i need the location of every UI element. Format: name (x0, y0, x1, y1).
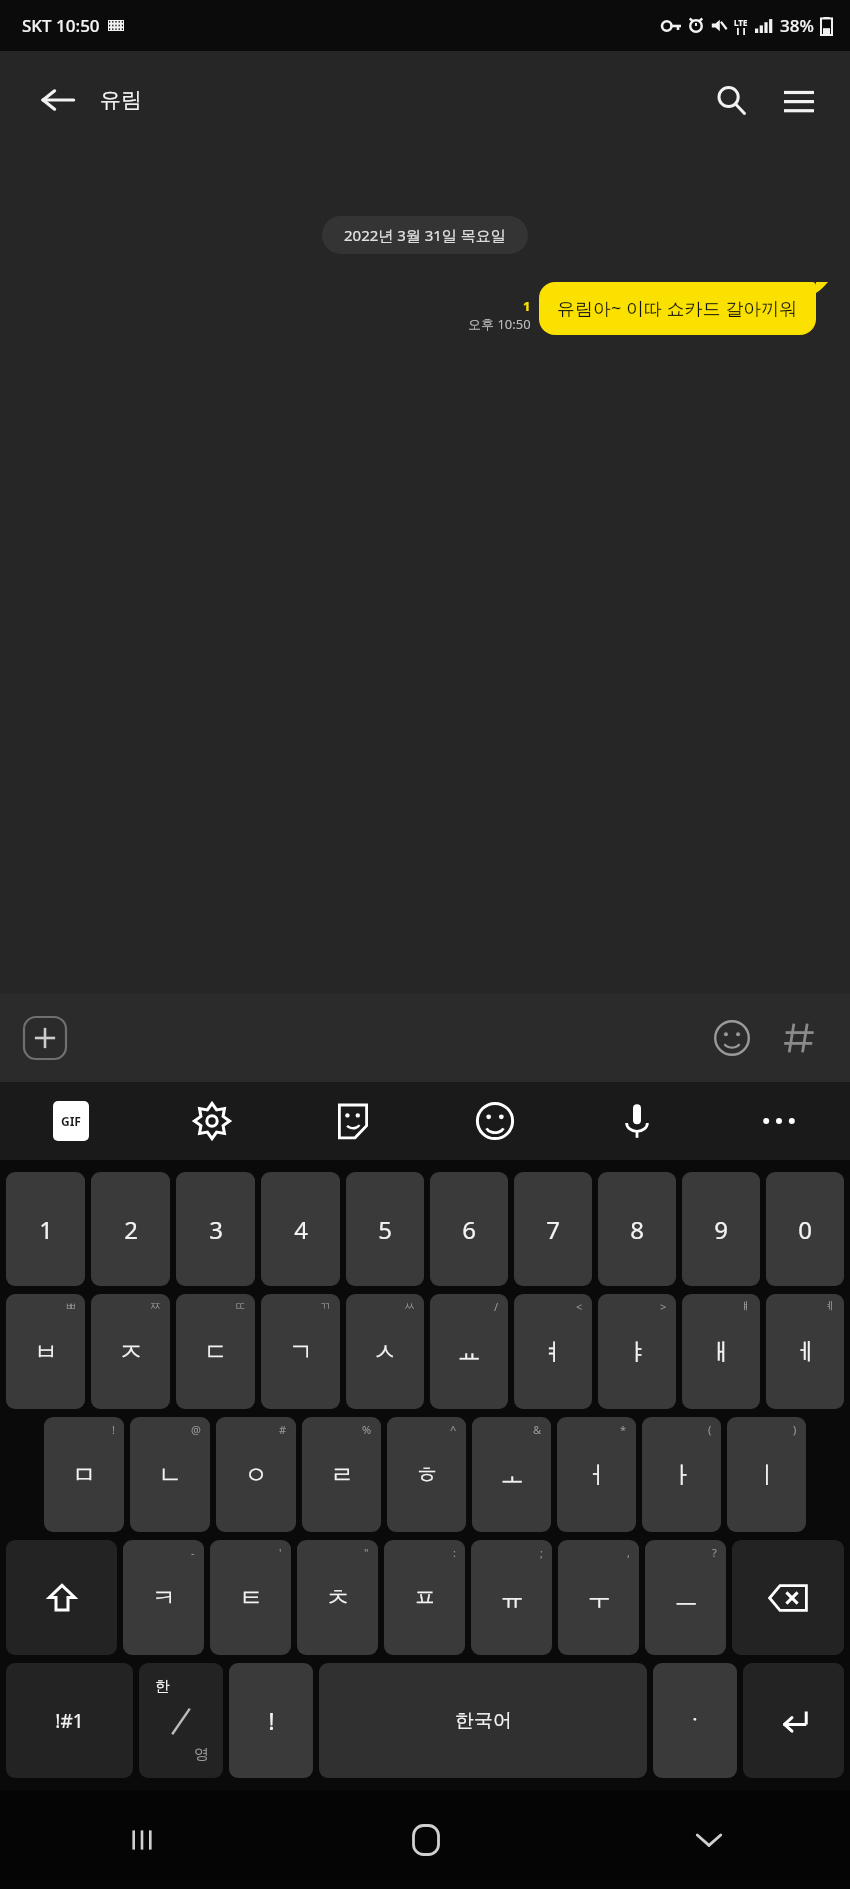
button[interactable]: sticker (282, 1082, 424, 1160)
staticText: ? (712, 1545, 717, 1560)
button[interactable]: ! (229, 1663, 313, 1778)
button[interactable]: ? (645, 1540, 726, 1655)
staticText: ㅋ (152, 1583, 176, 1613)
staticText: ! (112, 1422, 115, 1437)
button[interactable]: mic (566, 1082, 708, 1160)
button[interactable]: - (123, 1540, 204, 1655)
button[interactable]: : (384, 1540, 465, 1655)
staticText: ㅆ (404, 1299, 415, 1313)
button[interactable]: ! (44, 1417, 124, 1532)
button[interactable]: % (302, 1417, 381, 1532)
button[interactable]: ( (642, 1417, 721, 1532)
button[interactable]: 한국어 (319, 1663, 647, 1778)
staticText: > (660, 1299, 667, 1314)
button[interactable]: 9 (682, 1172, 760, 1286)
staticText: ㅂ (34, 1337, 58, 1367)
button[interactable]: 1 (6, 1172, 85, 1286)
staticText: @ (191, 1422, 201, 1437)
button[interactable]: ㅉ (91, 1294, 170, 1409)
button[interactable]: Back (30, 72, 86, 128)
staticText: !#1 (55, 1708, 84, 1734)
staticText: 2022년 3월 31일 목요일 (344, 225, 506, 245)
staticText: ㅌ (239, 1583, 263, 1613)
button[interactable]: gear (141, 1082, 282, 1160)
button[interactable]: Menu (770, 71, 828, 129)
staticText: ㅗ (500, 1460, 524, 1490)
button[interactable]: 3 (176, 1172, 255, 1286)
button[interactable]: Hashtag (774, 1012, 826, 1064)
staticText: ㅖ (824, 1299, 835, 1313)
staticText: ㅍ (413, 1583, 437, 1613)
button[interactable]: hanyeong (139, 1663, 223, 1778)
button[interactable]: ) (727, 1417, 806, 1532)
staticText: 4 (294, 1213, 308, 1246)
button[interactable]: Emoticon (706, 1012, 758, 1064)
staticText: * (620, 1422, 627, 1437)
staticText: ㄹ (330, 1460, 354, 1490)
button[interactable]: # (216, 1417, 296, 1532)
button[interactable]: & (472, 1417, 551, 1532)
button[interactable]: 8 (598, 1172, 676, 1286)
button[interactable]: 4 (261, 1172, 340, 1286)
button[interactable]: 유림아~ 이따 쇼카드 갈아끼워 (539, 282, 816, 335)
staticText: ! (268, 1704, 275, 1737)
button[interactable]: / (430, 1294, 508, 1409)
button[interactable]: ㄸ (176, 1294, 255, 1409)
button[interactable]: ㅖ (766, 1294, 844, 1409)
button[interactable]: back (732, 1540, 844, 1655)
button[interactable]: Search (702, 71, 760, 129)
staticText: " (364, 1545, 369, 1560)
button[interactable]: ㅃ (6, 1294, 85, 1409)
staticText: SKT 10:50 (22, 14, 100, 37)
staticText: ㅜ (587, 1583, 611, 1613)
button[interactable]: 2 (91, 1172, 170, 1286)
staticText: ㅃ (65, 1299, 76, 1313)
button[interactable]: , (558, 1540, 639, 1655)
staticText: ㆍ (683, 1706, 707, 1736)
staticText: / (494, 1299, 499, 1314)
staticText: ㅏ (670, 1460, 694, 1490)
staticText: ㅐ (709, 1337, 733, 1367)
staticText: ' (279, 1545, 282, 1560)
button[interactable]: gif (0, 1082, 141, 1160)
button[interactable]: !#1 (6, 1663, 133, 1778)
staticText: ㅈ (119, 1337, 143, 1367)
staticText: ㅅ (373, 1337, 397, 1367)
button[interactable]: Attach (18, 1011, 72, 1065)
staticText: 오후 10:50 (468, 315, 531, 333)
button[interactable]: ^ (387, 1417, 466, 1532)
staticText: ㄸ (235, 1299, 246, 1313)
staticText: ㅒ (740, 1299, 751, 1313)
button[interactable]: Home (284, 1790, 567, 1889)
button[interactable]: @ (130, 1417, 210, 1532)
button[interactable]: Recents (0, 1790, 284, 1889)
staticText: 한 (155, 1677, 170, 1696)
button[interactable]: ㄲ (261, 1294, 340, 1409)
staticText: 영 (194, 1745, 209, 1764)
button[interactable]: Hide keyboard (567, 1790, 850, 1889)
staticText: 한국어 (455, 1709, 512, 1733)
button[interactable]: shift (6, 1540, 117, 1655)
button[interactable]: " (297, 1540, 378, 1655)
staticText: ㄷ (204, 1337, 228, 1367)
button[interactable]: ' (210, 1540, 291, 1655)
button[interactable]: 7 (514, 1172, 592, 1286)
staticText: < (576, 1299, 583, 1314)
button[interactable]: 5 (346, 1172, 424, 1286)
button[interactable]: smile (424, 1082, 566, 1160)
button[interactable]: more (708, 1082, 850, 1160)
button[interactable]: 0 (766, 1172, 844, 1286)
button[interactable]: > (598, 1294, 676, 1409)
button[interactable]: ㆍ (653, 1663, 737, 1778)
button[interactable]: < (514, 1294, 592, 1409)
button[interactable]: 6 (430, 1172, 508, 1286)
staticText: # (279, 1422, 287, 1437)
button[interactable]: * (557, 1417, 636, 1532)
button[interactable]: ㅆ (346, 1294, 424, 1409)
button[interactable]: enter (743, 1663, 844, 1778)
staticText: 1 (39, 1213, 53, 1246)
staticText: ㅕ (541, 1337, 565, 1367)
button[interactable]: ㅒ (682, 1294, 760, 1409)
button[interactable]: ; (471, 1540, 552, 1655)
staticText: ㅠ (500, 1583, 524, 1613)
